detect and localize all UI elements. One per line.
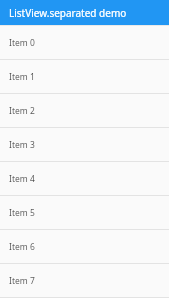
button[interactable]: Item 1 [0,60,169,93]
button[interactable]: Item 5 [0,196,169,229]
button[interactable]: Item 3 [0,128,169,161]
button[interactable]: Item 0 [0,26,169,59]
staticText: Item 2 [9,105,35,117]
button[interactable]: Item 6 [0,230,169,263]
button[interactable]: Item 4 [0,162,169,195]
staticText: Item 7 [9,275,35,287]
staticText: ListView.separated demo [9,6,127,20]
staticText: Item 1 [9,71,35,83]
staticText: Item 0 [9,37,35,49]
button[interactable]: Item 2 [0,94,169,127]
staticText: Item 6 [9,241,35,253]
button[interactable]: Item 7 [0,264,169,297]
staticText: Item 4 [9,173,35,185]
staticText: Item 5 [9,207,35,219]
staticText: Item 3 [9,139,35,151]
